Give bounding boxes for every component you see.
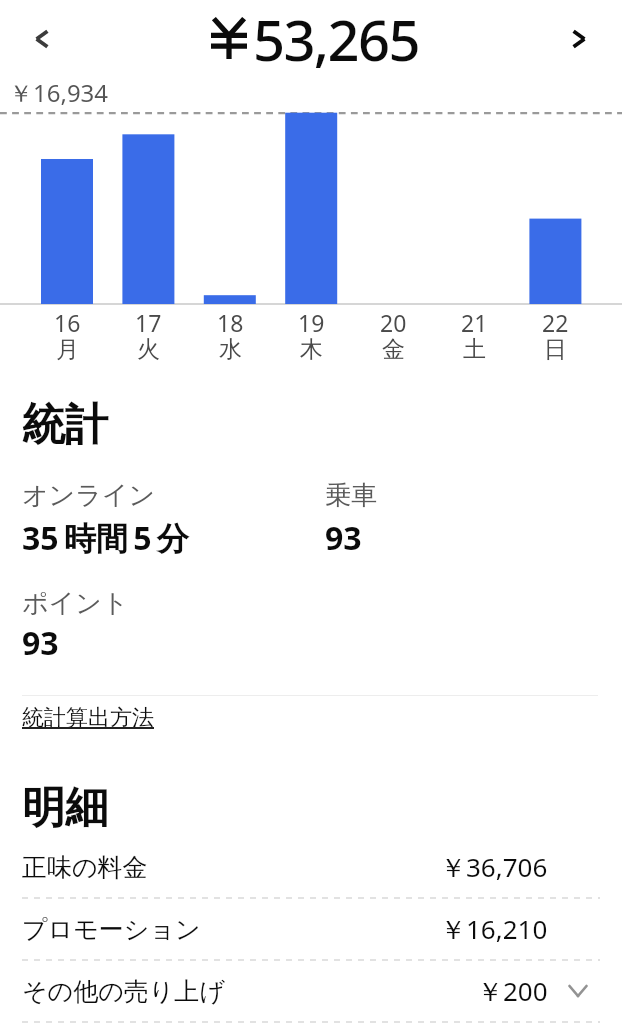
staticText: 統計算出方法	[22, 704, 154, 732]
button[interactable]: プロモーション	[0, 898, 622, 960]
staticText: 93	[22, 621, 59, 665]
staticText: ￥36,706	[440, 849, 548, 885]
staticText: ポイント	[22, 587, 129, 620]
staticText: 正味の料金	[22, 852, 148, 883]
staticText: 20	[380, 307, 407, 338]
staticText: 土	[463, 335, 486, 364]
staticText: 21	[461, 307, 488, 338]
button[interactable]: 統計算出方法	[22, 700, 154, 728]
other: ￥	[211, 16, 247, 59]
staticText: 日	[544, 335, 567, 364]
staticText: 金	[382, 335, 405, 364]
button[interactable]: Next week	[551, 11, 607, 67]
staticText: 53,265	[253, 1, 419, 77]
staticText: 火	[137, 335, 160, 364]
button[interactable]: 正味の料金	[0, 836, 622, 898]
button[interactable]: その他の売り上げ	[0, 960, 622, 1022]
staticText: 水	[219, 335, 242, 364]
staticText: 35 時間 5 分	[22, 516, 189, 560]
staticText: プロモーション	[22, 914, 201, 945]
button[interactable]: Previous week	[14, 11, 70, 67]
staticText: ￥16,934	[9, 76, 109, 109]
staticText: 17	[135, 307, 162, 338]
staticText: オンライン	[22, 479, 156, 512]
staticText: 明細	[22, 781, 108, 835]
staticText: その他の売り上げ	[22, 976, 225, 1007]
staticText: ￥200	[477, 973, 548, 1009]
staticText: 18	[217, 307, 244, 338]
staticText: 木	[300, 335, 323, 364]
staticText: 月	[56, 335, 79, 364]
staticText: 93	[325, 516, 362, 560]
staticText: 19	[298, 307, 325, 338]
staticText: 乗車	[325, 479, 377, 512]
staticText: 16	[54, 307, 81, 338]
staticText: 統計	[22, 398, 108, 452]
staticText: 22	[542, 307, 569, 338]
staticText: ￥16,210	[440, 911, 548, 947]
